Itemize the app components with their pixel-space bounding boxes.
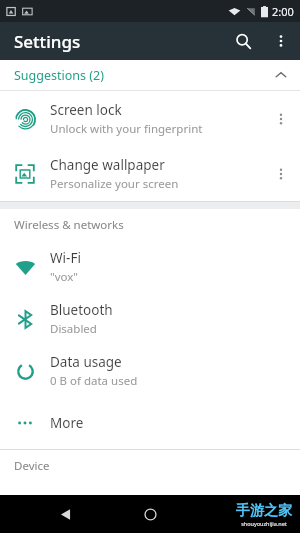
button[interactable]: Search [224, 22, 262, 60]
button[interactable]: More options [262, 22, 300, 60]
staticText: Wireless & networks [14, 217, 124, 233]
staticText: Data usage [50, 353, 122, 371]
staticText: Bluetooth [50, 301, 113, 319]
button[interactable]: Change wallpaper [0, 146, 300, 201]
staticText: Personalize your screen [50, 176, 179, 192]
button[interactable]: Screen lock [0, 91, 300, 146]
staticText: Wi-Fi [50, 249, 81, 267]
staticText: Suggestions (2) [14, 67, 104, 84]
staticText: Unlock with your fingerprint [50, 121, 203, 137]
staticText: shouyouzhijia.net [241, 520, 287, 527]
staticText: Disabled [50, 321, 97, 337]
staticText: 0 B of data used [50, 373, 138, 389]
staticText: 2:00 [272, 4, 294, 19]
button[interactable]: Data usage [0, 345, 300, 397]
button[interactable]: Dismiss suggestion [262, 100, 300, 138]
button[interactable]: Dismiss suggestion [262, 155, 300, 193]
button[interactable]: More [0, 397, 300, 449]
staticText: Screen lock [50, 101, 122, 119]
button[interactable]: Suggestions (2) [0, 60, 300, 90]
button[interactable]: Home [135, 499, 165, 529]
staticText: Device [14, 458, 50, 474]
button[interactable]: Bluetooth [0, 293, 300, 345]
button[interactable]: Back [50, 499, 80, 529]
button[interactable]: Wi-Fi [0, 241, 300, 293]
staticText: Settings [14, 30, 81, 53]
staticText: More [50, 414, 84, 432]
staticText: "vox" [50, 269, 79, 285]
staticText: 手游之家 [236, 502, 292, 520]
staticText: Change wallpaper [50, 156, 165, 174]
